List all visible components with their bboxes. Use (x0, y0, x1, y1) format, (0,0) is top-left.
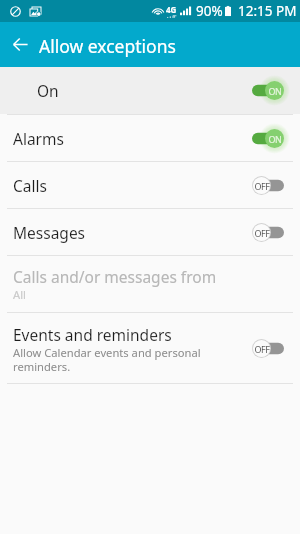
staticText: Alarms (13, 128, 64, 149)
staticText: OFF (254, 227, 270, 239)
button[interactable]: On (0, 67, 300, 114)
button[interactable]: Off (249, 173, 287, 198)
staticText: Events and reminders (13, 324, 172, 345)
button[interactable]: Navigate up (0, 22, 39, 67)
staticText: 4G (166, 4, 177, 15)
button[interactable]: On (249, 78, 287, 103)
staticText: Calls (13, 175, 47, 196)
button[interactable]: On (249, 126, 287, 151)
button[interactable]: Messages (0, 209, 300, 255)
staticText: OFF (254, 343, 270, 355)
staticText: ON (268, 133, 282, 145)
staticText: Calls and/or messages from (13, 266, 217, 287)
button[interactable]: Off (249, 220, 287, 245)
staticText: All (13, 287, 26, 302)
staticText: Allow Calendar events and personal remin… (13, 345, 201, 375)
button[interactable]: Events and reminders (0, 313, 300, 383)
staticText: OFF (254, 180, 270, 192)
staticText: 90% (196, 2, 223, 20)
staticText: 12:15 PM (238, 2, 297, 20)
staticText: Allow exceptions (39, 34, 176, 58)
staticText: ON (268, 85, 282, 97)
staticText: Messages (13, 222, 86, 243)
button[interactable]: Off (249, 336, 287, 361)
button[interactable]: Calls and/or messages from (0, 256, 300, 312)
staticText: On (37, 80, 59, 101)
button[interactable]: Calls (0, 162, 300, 208)
button[interactable]: Alarms (0, 115, 300, 161)
